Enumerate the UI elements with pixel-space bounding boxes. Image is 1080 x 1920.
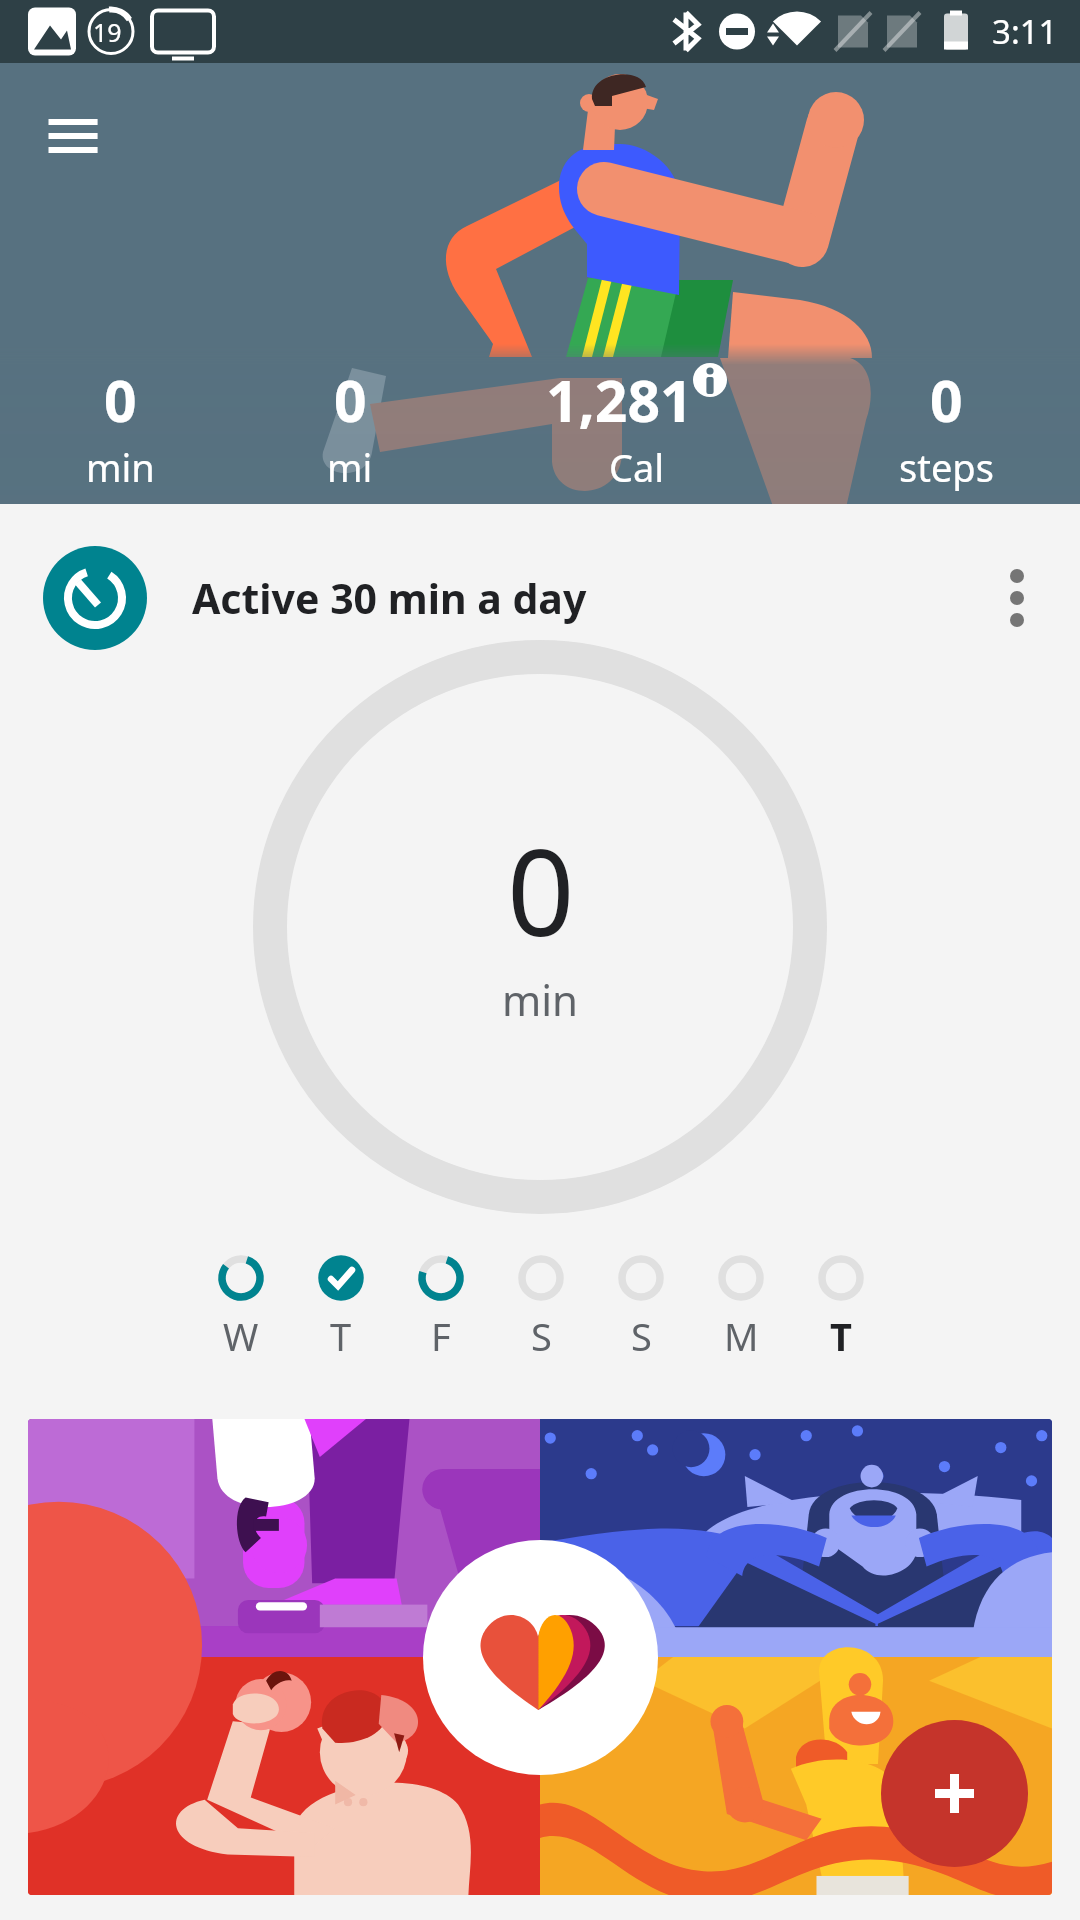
button[interactable]: [28, 1419, 1052, 1895]
staticText: 3:11: [992, 9, 1058, 54]
staticText: S: [531, 1310, 552, 1362]
button[interactable]: S: [591, 1255, 691, 1362]
staticText: T: [830, 1310, 852, 1362]
staticText: 0: [104, 361, 137, 439]
staticText: T: [330, 1310, 352, 1362]
button[interactable]: 1,281: [546, 361, 727, 493]
staticText: mi: [327, 441, 373, 493]
staticText: min: [86, 441, 155, 493]
staticText: 19: [93, 15, 122, 49]
button[interactable]: 0: [899, 361, 994, 493]
staticText: 0: [507, 810, 575, 971]
button[interactable]: F: [391, 1255, 491, 1362]
button[interactable]: M: [691, 1255, 791, 1362]
staticText: steps: [899, 441, 994, 493]
button[interactable]: W: [191, 1255, 291, 1362]
staticText: F: [431, 1310, 451, 1362]
button[interactable]: 0: [327, 361, 373, 493]
button[interactable]: Menu: [13, 87, 133, 207]
button[interactable]: Active 30 min a day: [0, 504, 1080, 692]
button[interactable]: S: [491, 1255, 591, 1362]
button[interactable]: 0: [86, 361, 155, 493]
staticText: Active 30 min a day: [192, 570, 587, 626]
button[interactable]: T: [791, 1255, 891, 1362]
button[interactable]: Add: [881, 1720, 1028, 1867]
staticText: S: [631, 1310, 652, 1362]
staticText: 1,281: [546, 361, 693, 439]
staticText: M: [724, 1310, 759, 1362]
staticText: 0: [930, 361, 963, 439]
staticText: W: [223, 1310, 259, 1362]
staticText: min: [502, 971, 579, 1028]
button[interactable]: More options: [972, 553, 1062, 643]
staticText: 0: [334, 361, 367, 439]
button[interactable]: T: [291, 1255, 391, 1362]
staticText: Cal: [609, 441, 665, 493]
